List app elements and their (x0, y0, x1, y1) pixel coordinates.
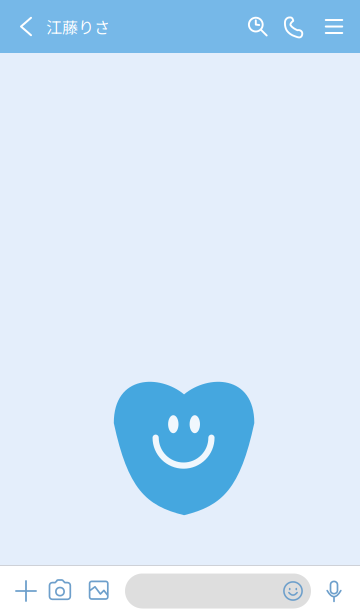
button[interactable]: Camera (40, 576, 74, 606)
button[interactable]: Photos (74, 576, 112, 606)
button[interactable]: Message input field (112, 573, 311, 608)
button[interactable]: Search messages (243, 11, 271, 41)
button[interactable]: Voice message (311, 576, 360, 606)
button[interactable]: Call (271, 11, 309, 41)
staticText: 江藤りさ (46, 15, 110, 38)
button[interactable]: Menu (309, 11, 360, 41)
button[interactable]: Back (0, 13, 37, 39)
button[interactable]: More options (0, 576, 40, 606)
